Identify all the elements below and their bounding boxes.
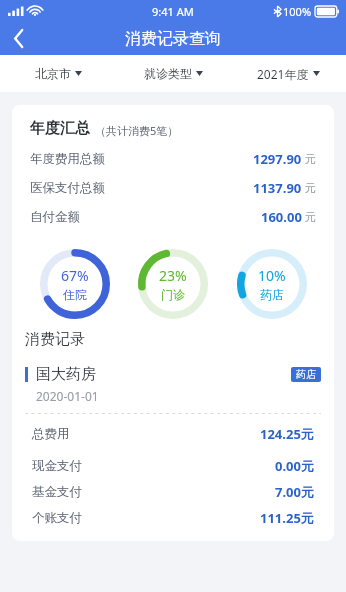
staticText: 消费记录查询 bbox=[125, 29, 221, 49]
staticText: 国大药房 bbox=[36, 365, 96, 384]
staticText: 0.00元 bbox=[275, 457, 314, 475]
staticText: （共计消费5笔） bbox=[95, 123, 179, 138]
staticText: 124.25元 bbox=[260, 425, 314, 443]
button[interactable]: 2021年度 bbox=[231, 55, 346, 92]
staticText: 23% bbox=[159, 266, 187, 285]
staticText: 160.00 bbox=[261, 208, 302, 226]
staticText: 自付金额 bbox=[30, 209, 80, 225]
staticText: 9:41 AM bbox=[152, 4, 194, 19]
staticText: 住院 bbox=[63, 287, 87, 302]
staticText: 元 bbox=[305, 210, 316, 224]
staticText: 个账支付 bbox=[32, 510, 82, 526]
button[interactable]: 就诊类型 bbox=[116, 55, 231, 92]
staticText: 北京市 bbox=[35, 66, 71, 81]
staticText: 就诊类型 bbox=[144, 66, 192, 81]
staticText: 100% bbox=[283, 4, 312, 19]
staticText: 7.00元 bbox=[275, 483, 314, 501]
staticText: 111.25元 bbox=[260, 509, 314, 527]
staticText: 年度汇总 bbox=[30, 119, 90, 138]
button[interactable]: 国大药房 bbox=[12, 365, 334, 541]
staticText: 现金支付 bbox=[32, 458, 82, 474]
button[interactable]: Back bbox=[0, 22, 38, 55]
staticText: 1137.90 bbox=[253, 179, 302, 197]
button[interactable]: 北京市 bbox=[0, 55, 116, 92]
staticText: 2020-01-01 bbox=[36, 388, 99, 404]
staticText: 药店 bbox=[296, 368, 316, 381]
staticText: 10% bbox=[258, 266, 286, 285]
staticText: 药店 bbox=[260, 287, 284, 302]
staticText: 医保支付总额 bbox=[30, 180, 105, 196]
staticText: 年度费用总额 bbox=[30, 151, 105, 167]
staticText: 1297.90 bbox=[253, 150, 302, 168]
staticText: 2021年度 bbox=[257, 66, 309, 82]
staticText: 门诊 bbox=[161, 287, 185, 302]
staticText: 基金支付 bbox=[32, 484, 82, 500]
staticText: 67% bbox=[61, 266, 89, 285]
staticText: 消费记录 bbox=[25, 330, 85, 349]
staticText: 元 bbox=[305, 181, 316, 195]
staticText: 总费用 bbox=[32, 426, 70, 442]
staticText: 元 bbox=[305, 152, 316, 166]
